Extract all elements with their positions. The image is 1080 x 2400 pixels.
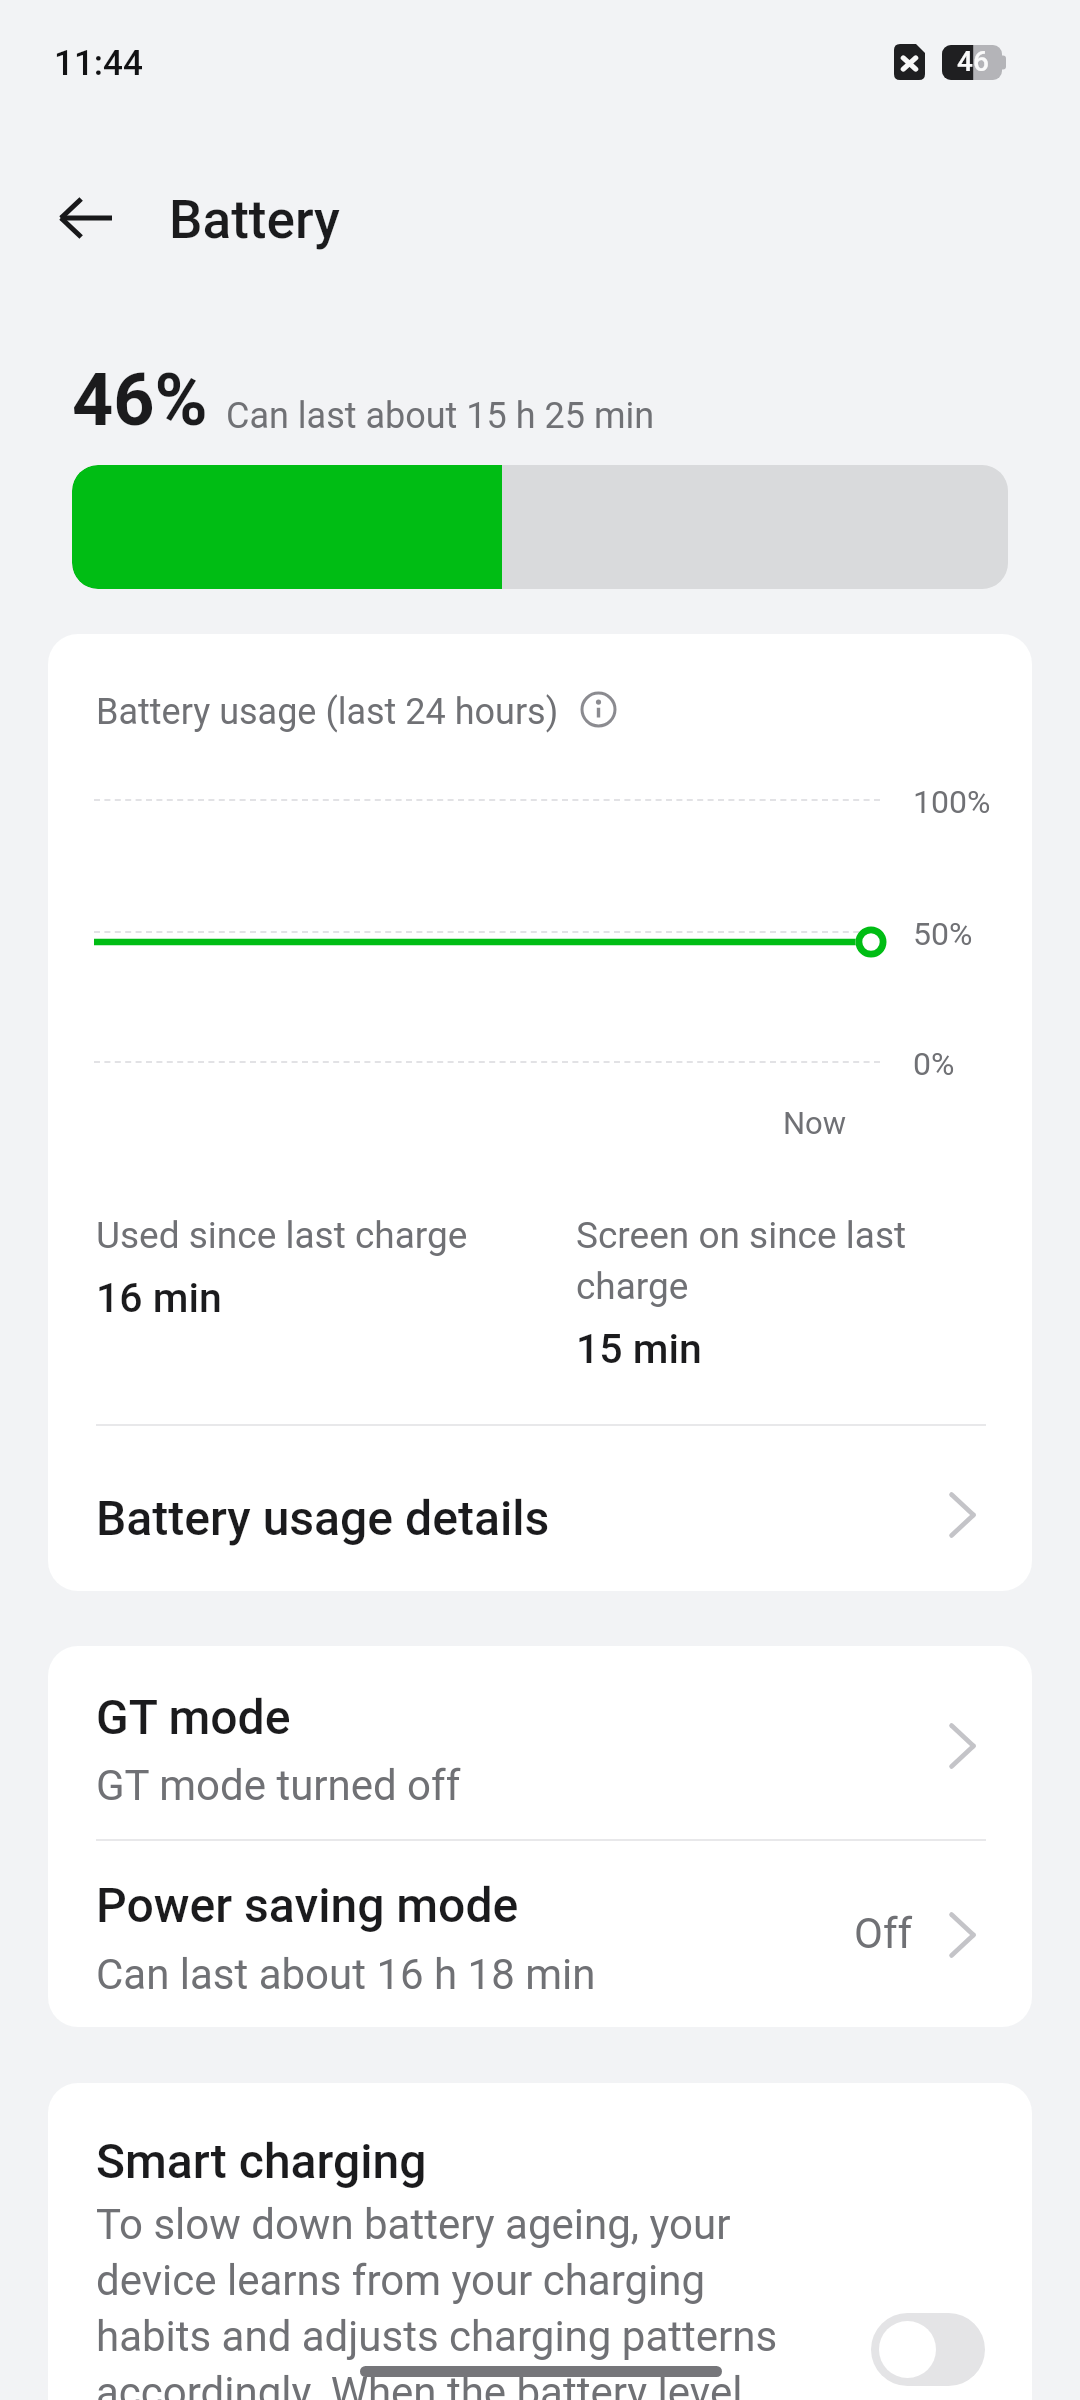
button[interactable]: About battery usage: [574, 685, 623, 734]
staticText: 11:44: [54, 43, 143, 84]
staticText: Battery: [169, 189, 340, 251]
button[interactable]: Back: [44, 176, 128, 260]
staticText: Now: [783, 1105, 847, 1141]
staticText: Screen on since last charge: [576, 1214, 928, 1308]
staticText: GT mode: [96, 1689, 291, 1745]
staticText: 50%: [913, 915, 973, 953]
button[interactable]: Smart charging toggle: [871, 2313, 985, 2386]
staticText: Can last about 15 h 25 min: [226, 395, 655, 437]
staticText: 46%: [72, 358, 208, 442]
staticText: 0%: [913, 1045, 955, 1083]
staticText: Battery usage details: [96, 1490, 550, 1546]
staticText: 15 min: [576, 1325, 702, 1373]
staticText: To slow down battery ageing, your device…: [96, 2200, 826, 2400]
staticText: 100%: [913, 783, 991, 821]
staticText: GT mode turned off: [96, 1761, 461, 1810]
staticText: Off: [854, 1909, 913, 1958]
staticText: Used since last charge: [96, 1214, 468, 1257]
staticText: Smart charging: [96, 2133, 427, 2189]
button[interactable]: Power saving mode: [48, 1839, 1032, 2027]
staticText: 46: [957, 45, 989, 78]
button[interactable]: Battery usage details: [48, 1426, 1032, 1591]
staticText: Battery usage (last 24 hours): [96, 691, 559, 733]
staticText: Can last about 16 h 18 min: [96, 1950, 596, 1999]
staticText: 16 min: [96, 1274, 222, 1322]
staticText: Power saving mode: [96, 1877, 519, 1933]
button[interactable]: GT mode: [48, 1646, 1032, 1839]
